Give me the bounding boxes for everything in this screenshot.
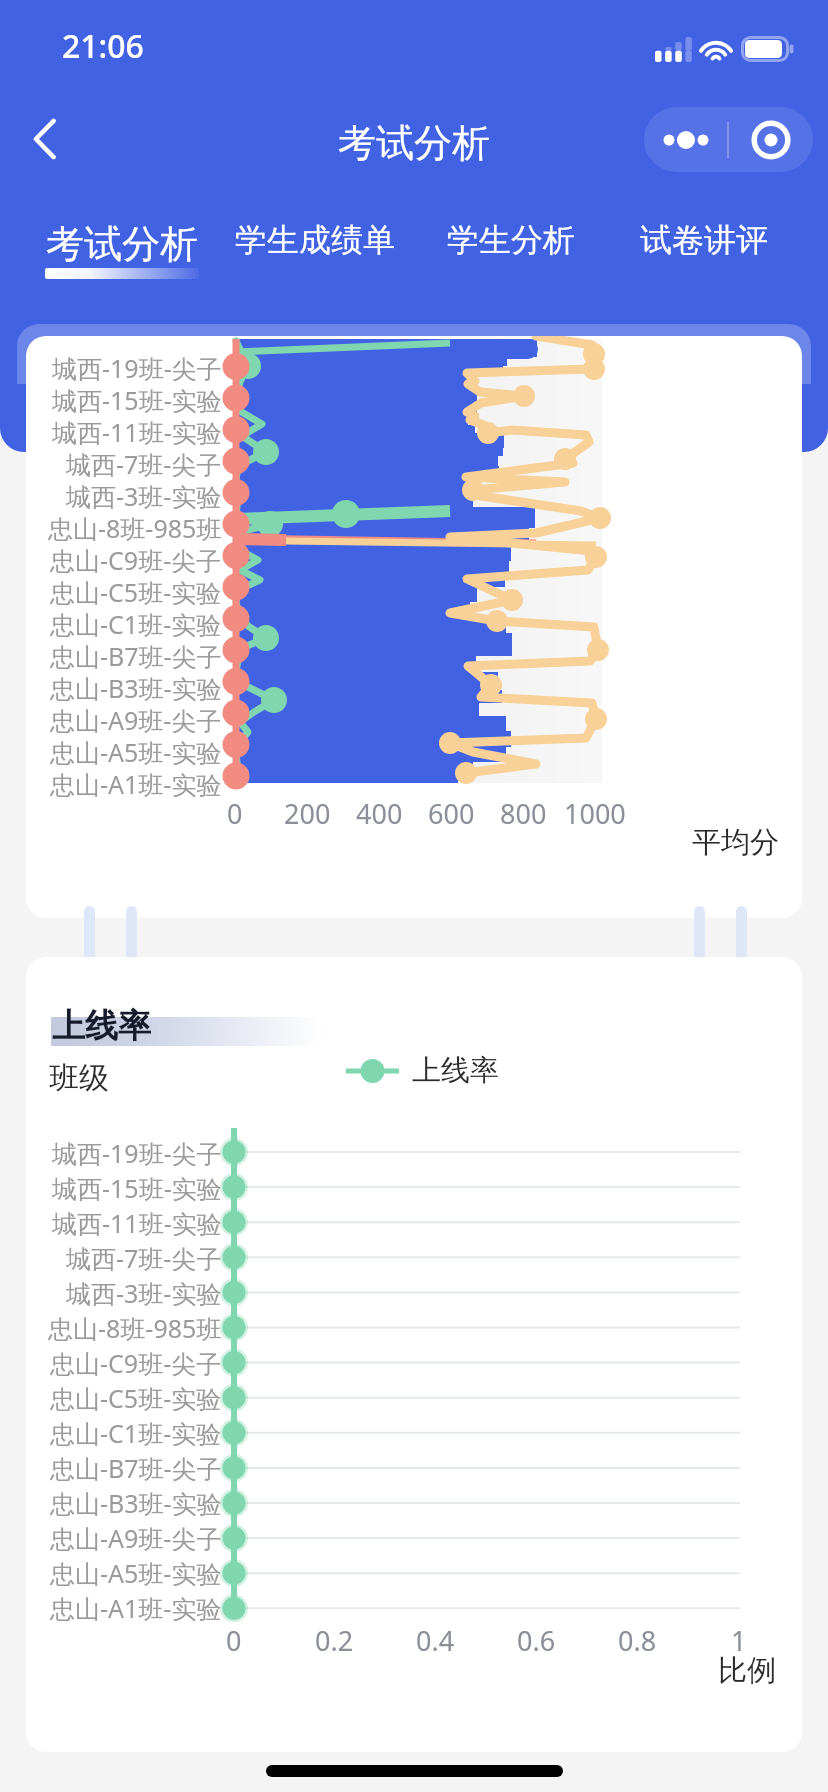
- staticText: 城西-7班-尖子: [66, 1241, 222, 1275]
- staticText: 城西-3班-实验: [66, 1276, 222, 1310]
- staticText: 忠山-8班-985班: [48, 1311, 222, 1345]
- staticText: 城西-15班-实验: [52, 383, 222, 415]
- staticText: 1000: [564, 795, 626, 832]
- staticText: 忠山-B3班-实验: [50, 671, 222, 703]
- staticText: 忠山-C5班-实验: [50, 575, 222, 607]
- button[interactable]: 学生分析: [401, 220, 621, 284]
- staticText: 0.8: [618, 1622, 657, 1659]
- staticText: 城西-11班-实验: [52, 1206, 222, 1240]
- button[interactable]: 试卷讲评: [594, 220, 814, 284]
- button[interactable]: 考试分析: [12, 220, 232, 284]
- button[interactable]: Back: [13, 107, 77, 171]
- staticText: 0: [227, 795, 243, 832]
- staticText: 忠山-B7班-尖子: [50, 639, 222, 671]
- staticText: 上线率: [52, 1005, 151, 1043]
- staticText: 800: [500, 795, 547, 832]
- staticText: 班级: [49, 1059, 109, 1096]
- staticText: 忠山-A9班-尖子: [50, 703, 222, 735]
- staticText: 学生分析: [447, 220, 575, 260]
- staticText: 上线率: [412, 1052, 499, 1089]
- staticText: 200: [284, 795, 331, 832]
- staticText: 忠山-A1班-实验: [50, 767, 222, 799]
- staticText: 考试分析: [338, 119, 490, 167]
- staticText: 忠山-C9班-尖子: [50, 543, 222, 575]
- staticText: 比例: [718, 1652, 776, 1689]
- staticText: 学生成绩单: [235, 220, 395, 260]
- staticText: 忠山-A1班-实验: [50, 1591, 222, 1625]
- button[interactable]: 上线率: [26, 957, 802, 1752]
- staticText: 400: [356, 795, 403, 832]
- staticText: 忠山-B3班-实验: [50, 1486, 222, 1520]
- staticText: 600: [428, 795, 475, 832]
- staticText: 21:06: [62, 24, 144, 68]
- staticText: 城西-19班-尖子: [52, 1136, 222, 1170]
- staticText: 城西-3班-实验: [66, 479, 222, 511]
- staticText: 忠山-C1班-实验: [50, 1416, 222, 1450]
- staticText: 忠山-C9班-尖子: [50, 1346, 222, 1380]
- staticText: 忠山-B7班-尖子: [50, 1451, 222, 1485]
- button[interactable]: 学生成绩单: [205, 220, 425, 284]
- staticText: 忠山-A9班-尖子: [50, 1521, 222, 1555]
- staticText: 1: [731, 1622, 747, 1659]
- staticText: 忠山-C1班-实验: [50, 607, 222, 639]
- staticText: 忠山-A5班-实验: [50, 1556, 222, 1590]
- staticText: 城西-11班-实验: [52, 415, 222, 447]
- staticText: 考试分析: [46, 220, 198, 268]
- staticText: 0: [226, 1622, 242, 1659]
- button[interactable]: More options: [644, 107, 813, 172]
- staticText: 城西-7班-尖子: [66, 447, 222, 479]
- staticText: 0.6: [517, 1622, 556, 1659]
- staticText: 平均分: [692, 824, 779, 861]
- staticText: 忠山-8班-985班: [48, 511, 222, 543]
- staticText: 城西-15班-实验: [52, 1171, 222, 1205]
- staticText: 0.2: [315, 1622, 354, 1659]
- button[interactable]: 城西-19班-尖子: [26, 336, 802, 918]
- staticText: 忠山-A5班-实验: [50, 735, 222, 767]
- staticText: 城西-19班-尖子: [52, 351, 222, 383]
- staticText: 试卷讲评: [640, 220, 768, 260]
- staticText: 0.4: [416, 1622, 455, 1659]
- staticText: 忠山-C5班-实验: [50, 1381, 222, 1415]
